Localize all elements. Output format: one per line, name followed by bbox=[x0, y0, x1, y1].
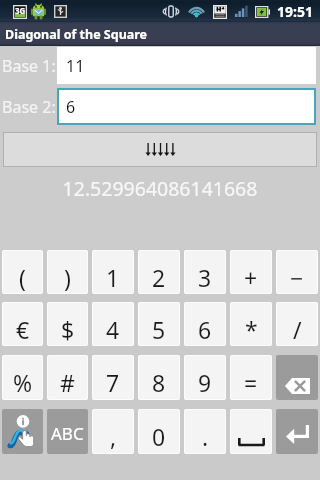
button[interactable]: € bbox=[2, 302, 43, 346]
staticText: = bbox=[244, 367, 258, 398]
button[interactable]: / bbox=[276, 302, 318, 346]
staticText: 4 bbox=[106, 314, 120, 345]
staticText: 3 bbox=[198, 262, 212, 293]
staticText: 5 bbox=[152, 314, 166, 345]
staticText: ABC bbox=[51, 422, 84, 445]
button[interactable]: # bbox=[47, 355, 88, 400]
button[interactable]: 1 bbox=[92, 250, 134, 294]
staticText: + bbox=[244, 262, 258, 293]
button[interactable]: % bbox=[2, 355, 43, 400]
staticText: Diagonal of the Square bbox=[5, 26, 148, 43]
staticText: 8 bbox=[152, 367, 166, 398]
button[interactable]: 3 bbox=[184, 250, 226, 294]
button[interactable]: 7 bbox=[92, 355, 134, 400]
button[interactable]: Backspace bbox=[276, 355, 318, 400]
staticText: . bbox=[202, 421, 209, 452]
staticText: 3G bbox=[15, 5, 26, 16]
button[interactable] bbox=[4, 133, 316, 166]
button[interactable]: ( bbox=[2, 250, 43, 294]
staticText: 9 bbox=[198, 367, 212, 398]
staticText: ) bbox=[64, 262, 71, 293]
button[interactable]: − bbox=[276, 250, 318, 294]
staticText: , bbox=[110, 421, 117, 452]
button[interactable]: 6 bbox=[57, 88, 316, 125]
staticText: 7 bbox=[106, 367, 120, 398]
staticText: Base 2: bbox=[2, 96, 56, 118]
button[interactable]: Space bbox=[230, 409, 272, 454]
staticText: * bbox=[245, 314, 258, 345]
button[interactable]: Enter bbox=[276, 409, 318, 454]
staticText: 19:51 bbox=[277, 2, 313, 21]
staticText: € bbox=[16, 314, 30, 345]
staticText: 0 bbox=[152, 421, 166, 452]
button[interactable]: = bbox=[230, 355, 272, 400]
button[interactable]: . bbox=[184, 409, 226, 454]
staticText: − bbox=[290, 262, 304, 293]
staticText: # bbox=[60, 367, 75, 398]
staticText: 2 bbox=[152, 262, 166, 293]
staticText: $ bbox=[61, 314, 75, 345]
button[interactable]: * bbox=[230, 302, 272, 346]
button[interactable]: ABC bbox=[47, 409, 88, 454]
staticText: 11 bbox=[66, 55, 85, 77]
staticText: / bbox=[293, 314, 302, 345]
staticText: 6 bbox=[198, 314, 212, 345]
button[interactable]: Input method settings bbox=[2, 409, 43, 454]
button[interactable]: 9 bbox=[184, 355, 226, 400]
button[interactable]: , bbox=[92, 409, 134, 454]
button[interactable]: 5 bbox=[138, 302, 180, 346]
staticText: ( bbox=[19, 262, 26, 293]
button[interactable]: 2 bbox=[138, 250, 180, 294]
button[interactable]: 11 bbox=[57, 47, 316, 84]
staticText: 12.529964086141668 bbox=[0, 175, 320, 202]
button[interactable]: 0 bbox=[138, 409, 180, 454]
button[interactable]: $ bbox=[47, 302, 88, 346]
button[interactable]: 4 bbox=[92, 302, 134, 346]
staticText: 6 bbox=[66, 96, 76, 118]
button[interactable]: + bbox=[230, 250, 272, 294]
staticText: Base 1: bbox=[2, 55, 56, 77]
button[interactable]: ) bbox=[47, 250, 88, 294]
staticText: % bbox=[13, 367, 33, 398]
button[interactable]: 8 bbox=[138, 355, 180, 400]
button[interactable]: 6 bbox=[184, 302, 226, 346]
staticText: 1 bbox=[106, 262, 120, 293]
